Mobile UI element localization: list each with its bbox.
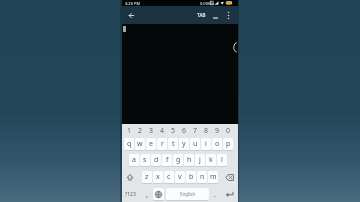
button[interactable]: o [212,138,222,150]
staticText: z [145,172,149,182]
staticText: 6 [182,126,187,136]
button[interactable]: u [190,138,200,150]
staticText: y [182,139,186,149]
button[interactable]: 3 [146,125,157,137]
button[interactable]: 5 [168,125,179,137]
staticText: ?123 [125,191,136,198]
staticText: v [178,172,182,182]
button[interactable]: a [129,154,139,166]
button[interactable] [122,24,238,124]
staticText: 9 [215,126,220,136]
button[interactable]: j [195,154,205,166]
staticText: 4 [160,126,165,136]
button[interactable]: TAB [193,10,209,20]
button[interactable]: y [179,138,189,150]
button[interactable]: h [184,154,194,166]
staticText: o [215,139,220,149]
staticText: x [156,172,160,182]
staticText: n [200,172,205,182]
staticText: 1 [127,126,132,136]
staticText: j [199,155,201,165]
button[interactable]: c [164,171,174,183]
button[interactable]: t [168,138,178,150]
button[interactable]: m [208,171,218,183]
staticText: i [205,139,207,149]
button[interactable]: d [151,154,161,166]
staticText: m [210,172,217,182]
staticText: r [161,139,164,149]
button[interactable] [222,171,237,184]
staticText: . [214,190,216,200]
button[interactable]: l [217,154,227,166]
staticText: TAB [197,12,206,18]
button[interactable]: 6 [179,125,190,137]
button[interactable] [153,188,164,200]
staticText: f [166,155,169,165]
staticText: a [132,155,136,165]
button[interactable]: k [206,154,216,166]
staticText: d [154,155,159,165]
button[interactable]: i [201,138,211,150]
button[interactable]: w [135,138,145,150]
button[interactable]: 1 [124,125,135,137]
button[interactable] [125,9,138,22]
button[interactable]: 4 [157,125,168,137]
button[interactable]: , [141,188,152,201]
staticText: u [193,139,198,149]
staticText: b [189,172,194,182]
button[interactable]: 8 [201,125,212,137]
staticText: q [127,139,132,149]
button[interactable] [123,171,138,184]
button[interactable]: b [186,171,196,183]
staticText: w [137,139,143,149]
staticText: t [172,139,175,149]
button[interactable]: r [157,138,167,150]
button[interactable] [222,188,237,201]
staticText: p [226,139,231,149]
staticText: 8 [204,126,209,136]
staticText: s [143,155,147,165]
staticText: g [176,155,181,165]
button[interactable]: 9 [212,125,223,137]
button[interactable]: v [175,171,185,183]
staticText: 0 [226,126,231,136]
button[interactable]: 0 [223,125,234,137]
button[interactable]: f [162,154,172,166]
staticText: , [146,190,148,200]
button[interactable] [224,9,233,22]
staticText: 3:26 PM [125,1,141,6]
button[interactable]: s [140,154,150,166]
button[interactable]: e [146,138,156,150]
staticText: c [167,172,171,182]
staticText: English [180,191,196,197]
button[interactable] [211,12,220,20]
button[interactable]: 7 [190,125,201,137]
button[interactable]: x [153,171,163,183]
staticText: h [187,155,192,165]
button[interactable]: English [166,188,209,200]
button[interactable]: z [142,171,152,183]
staticText: l [221,155,223,165]
button[interactable]: 2 [135,125,146,137]
staticText: 3 [149,126,154,136]
button[interactable]: ?123 [123,188,138,201]
button[interactable]: p [223,138,233,150]
staticText: e [149,139,153,149]
staticText: k [209,155,213,165]
button[interactable]: g [173,154,183,166]
staticText: 2 [138,126,143,136]
button[interactable]: n [197,171,207,183]
staticText: 0.00K/s [200,1,214,6]
button[interactable]: . [210,188,220,201]
staticText: 7 [193,126,198,136]
staticText: 5 [171,126,176,136]
button[interactable]: q [124,138,134,150]
